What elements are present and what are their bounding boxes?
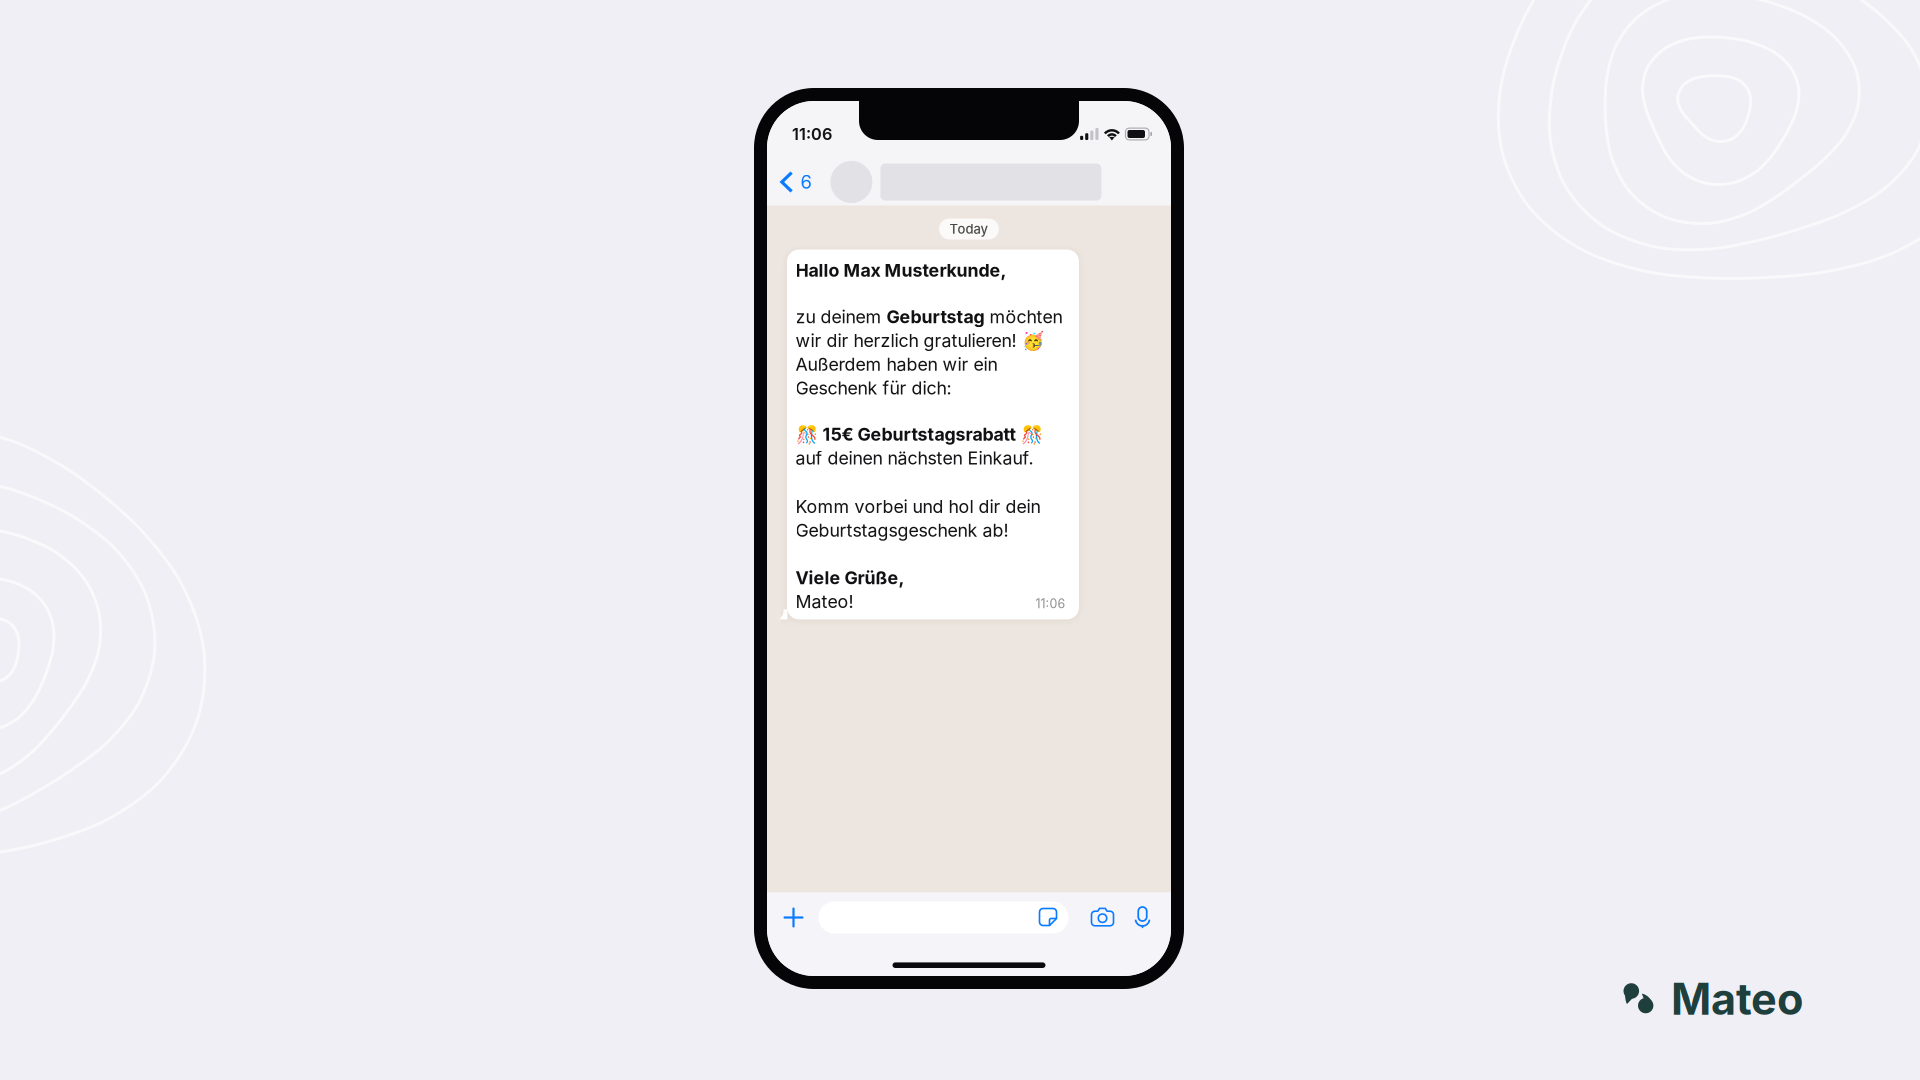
staticText: Mateo (1671, 973, 1803, 1025)
staticText: Komm vorbei und hol dir dein (795, 496, 1040, 517)
button[interactable]: Stickers (1033, 902, 1063, 932)
staticText: Viele Grüße, (795, 567, 904, 589)
staticText: Außerdem haben wir ein (795, 353, 997, 375)
staticText: auf deinen nächsten Einkauf. (795, 447, 1033, 469)
button[interactable]: Voice message (1129, 902, 1155, 932)
staticText: 11:06 (792, 124, 832, 144)
button[interactable]: Attach (777, 901, 809, 933)
staticText: Geburtstagsgeschenk ab! (795, 520, 1008, 541)
staticText: Hallo Max Musterkunde, (795, 260, 1006, 281)
button[interactable]: Camera (1087, 902, 1117, 932)
staticText: zu deinem Geburtstag möchten (795, 306, 1062, 327)
staticText: 11:06 (1035, 596, 1065, 611)
staticText: Geschenk für dich: (795, 377, 951, 399)
staticText: Today (949, 221, 988, 237)
button[interactable]: Contact (830, 152, 1101, 212)
staticText: 🎊 15€ Geburtstagsrabatt 🎊 (795, 424, 1042, 445)
staticText: Mateo! (795, 591, 853, 612)
button[interactable]: Back, 6 unread (767, 152, 821, 212)
staticText: wir dir herzlich gratulieren! 🥳 (795, 330, 1043, 351)
staticText: 6 (800, 171, 811, 193)
